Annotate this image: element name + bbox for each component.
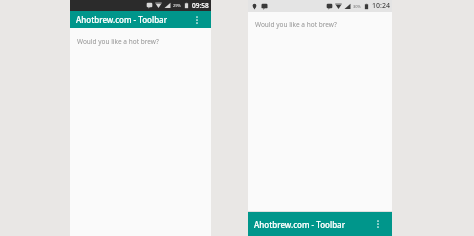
staticText: 09:58	[192, 1, 209, 10]
staticText: 10:24	[372, 1, 390, 11]
button[interactable]: Ahotbrew.com - Toolbar	[248, 212, 392, 236]
staticText: 30%	[353, 4, 361, 9]
button[interactable]: Ahotbrew.com - Toolbar	[70, 11, 211, 28]
button[interactable]: More options	[370, 216, 386, 232]
staticText: 29%	[173, 3, 181, 8]
staticText: Ahotbrew.com - Toolbar	[254, 219, 370, 230]
staticText: Ahotbrew.com - Toolbar	[76, 14, 189, 25]
staticText: Would you like a hot brew?	[255, 20, 337, 29]
staticText: Would you like a hot brew?	[77, 37, 159, 46]
button[interactable]: More options	[189, 12, 205, 28]
